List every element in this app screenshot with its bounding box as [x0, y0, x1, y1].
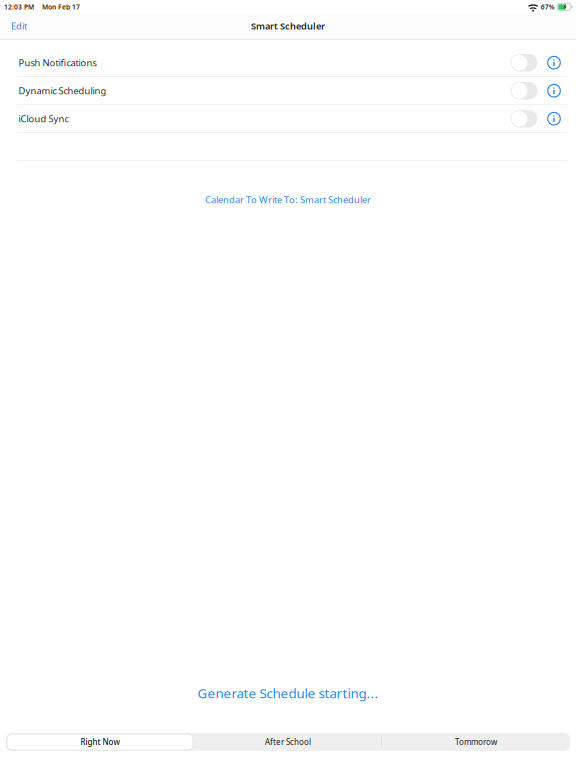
button[interactable]: After School: [194, 733, 382, 751]
button[interactable]: Generate Schedule starting...: [0, 681, 576, 705]
staticText: Right Now: [80, 737, 119, 747]
button[interactable]: Right Now: [6, 733, 194, 751]
staticText: After School: [265, 737, 311, 747]
staticText: Generate Schedule starting...: [197, 684, 378, 702]
button[interactable]: Tommorow: [382, 733, 570, 751]
staticText: Push Notifications: [18, 56, 96, 69]
button[interactable]: Push Notifications: [508, 49, 539, 76]
staticText: Mon Feb 17: [42, 3, 80, 11]
staticText: Smart Scheduler: [251, 20, 325, 32]
staticText: Edit: [11, 20, 27, 32]
button[interactable]: Info about Dynamic Scheduling: [543, 80, 564, 101]
staticText: 12:03 PM: [4, 3, 34, 11]
staticText: Calendar To Write To: Smart Scheduler: [205, 193, 371, 206]
button[interactable]: Calendar To Write To: Smart Scheduler: [0, 189, 576, 210]
button[interactable]: Edit: [0, 15, 38, 39]
staticText: Tommorow: [455, 737, 497, 747]
button[interactable]: Dynamic Scheduling: [508, 77, 539, 104]
staticText: iCloud Sync: [18, 112, 68, 125]
staticText: Dynamic Scheduling: [18, 84, 106, 97]
button[interactable]: Info about iCloud Sync: [543, 108, 564, 129]
button[interactable]: Info about Push Notifications: [543, 52, 564, 73]
button[interactable]: iCloud Sync: [508, 105, 539, 132]
staticText: 67%: [541, 3, 555, 11]
